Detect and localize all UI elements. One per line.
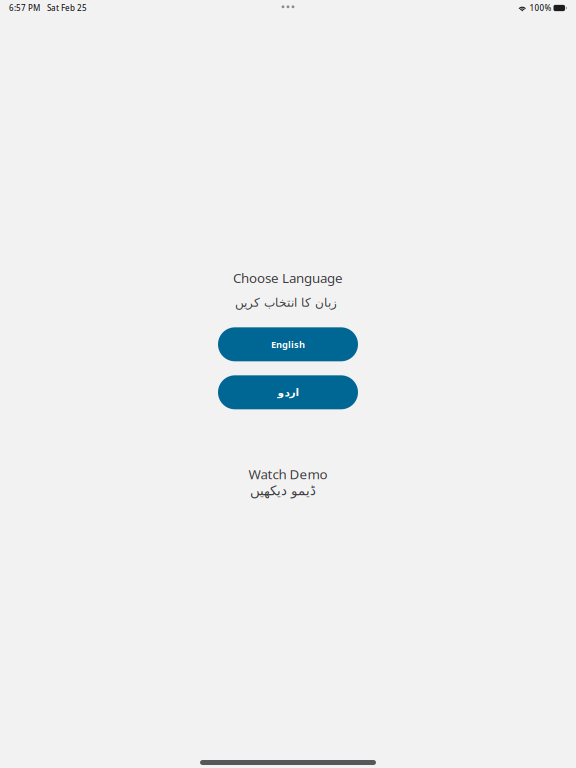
staticText: 100% <box>529 3 551 13</box>
staticText: Choose Language <box>233 269 343 287</box>
button[interactable]: English <box>218 327 358 361</box>
staticText: 6:57 PM <box>9 3 40 13</box>
button[interactable]: Watch Demo <box>248 465 327 498</box>
staticText: English <box>271 338 305 350</box>
staticText: ڈیمو دیکھیں <box>249 483 315 498</box>
button[interactable]: اردو <box>218 375 358 409</box>
staticText: Watch Demo <box>248 465 327 483</box>
staticText: اردو <box>277 386 299 398</box>
staticText: Sat Feb 25 <box>47 3 87 13</box>
staticText: زبان کا انتخاب کریں <box>234 296 336 309</box>
